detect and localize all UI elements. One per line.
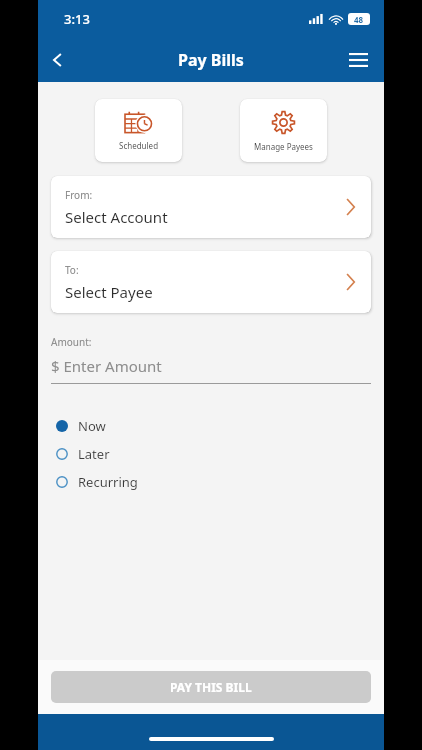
button[interactable]: Recurring	[38, 468, 384, 496]
staticText: 3:13	[64, 10, 90, 28]
staticText: Recurring	[78, 473, 138, 491]
button[interactable]: Scheduled	[95, 99, 182, 162]
button[interactable]: From:	[51, 176, 371, 238]
staticText: Now	[78, 417, 106, 435]
staticText: Manage Payees	[254, 141, 313, 152]
staticText: Pay Bills	[178, 49, 244, 71]
staticText: To:	[65, 263, 79, 277]
button[interactable]: Back	[38, 40, 78, 80]
button[interactable]: To:	[51, 251, 371, 313]
button[interactable]: Manage Payees	[240, 99, 327, 162]
button[interactable]: Now	[38, 412, 384, 440]
staticText: Scheduled	[119, 140, 159, 151]
button[interactable]: Later	[38, 440, 384, 468]
staticText: Later	[78, 445, 110, 463]
staticText: 48	[354, 14, 364, 25]
staticText: Amount:	[51, 335, 92, 349]
staticText: PAY THIS BILL	[170, 679, 252, 695]
staticText: Select Payee	[65, 282, 153, 302]
staticText: Select Account	[65, 207, 168, 227]
staticText: $ Enter Amount	[51, 356, 162, 376]
staticText: From:	[65, 188, 93, 202]
button[interactable]: PAY THIS BILL	[51, 671, 371, 703]
button[interactable]: Menu	[340, 42, 376, 78]
